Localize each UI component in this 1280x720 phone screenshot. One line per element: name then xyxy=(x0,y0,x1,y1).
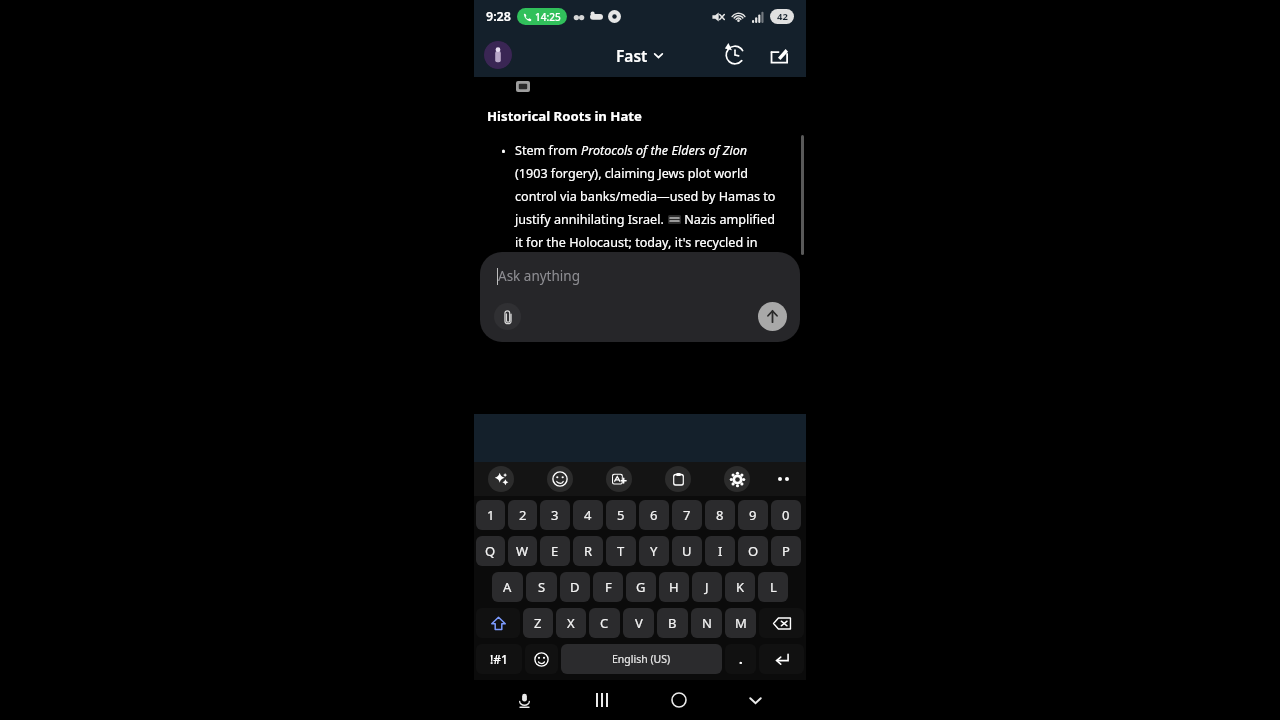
staticText: L xyxy=(770,578,777,596)
button[interactable]: B xyxy=(657,608,688,638)
button[interactable]: E xyxy=(540,536,570,566)
button[interactable]: Clipboard xyxy=(665,466,691,492)
button[interactable]: Send xyxy=(758,302,787,331)
staticText: B xyxy=(668,614,677,632)
button[interactable]: M xyxy=(725,608,756,638)
staticText: 5 xyxy=(617,506,625,524)
staticText: 7 xyxy=(683,506,691,524)
button[interactable]: L xyxy=(758,572,788,602)
button[interactable]: K xyxy=(725,572,755,602)
button[interactable]: Z xyxy=(523,608,553,638)
button[interactable]: S xyxy=(526,572,557,602)
button[interactable]: G xyxy=(626,572,656,602)
button[interactable]: Emoji xyxy=(525,644,558,674)
button[interactable]: U xyxy=(672,536,702,566)
button[interactable]: English (US) xyxy=(561,644,722,674)
staticText: 9:28 xyxy=(486,8,511,25)
button[interactable]: 8 xyxy=(705,500,735,530)
staticText: (1903 forgery), claiming Jews plot world xyxy=(515,165,748,182)
button[interactable]: T xyxy=(606,536,636,566)
button[interactable]: Voice input xyxy=(486,683,563,717)
staticText: Stem from xyxy=(515,142,581,159)
button[interactable]: 0 xyxy=(771,500,801,530)
staticText: Historical Roots in Hate xyxy=(487,107,642,125)
staticText: Ask anything xyxy=(498,267,580,285)
button[interactable]: C xyxy=(589,608,620,638)
button[interactable]: X xyxy=(556,608,586,638)
button[interactable]: 1 xyxy=(476,500,505,530)
button[interactable]: R xyxy=(573,536,603,566)
staticText: 14:25 xyxy=(535,10,561,24)
button[interactable]: 7 xyxy=(672,500,702,530)
staticText: X xyxy=(567,614,575,632)
staticText: D xyxy=(570,578,580,596)
button[interactable]: 3 xyxy=(540,500,570,530)
staticText: 6 xyxy=(650,506,658,524)
button[interactable]: D xyxy=(560,572,590,602)
staticText: Q xyxy=(485,542,496,560)
button[interactable]: 6 xyxy=(639,500,669,530)
button[interactable]: 9 xyxy=(738,500,768,530)
staticText: K xyxy=(736,578,745,596)
button[interactable]: 5 xyxy=(606,500,636,530)
staticText: T xyxy=(617,542,625,560)
button[interactable]: Q xyxy=(476,536,505,566)
staticText: Y xyxy=(650,542,658,560)
button[interactable]: More xyxy=(778,466,792,492)
staticText: 8 xyxy=(716,506,724,524)
button[interactable]: History xyxy=(720,40,750,70)
button[interactable]: Hide keyboard xyxy=(717,683,794,717)
staticText: P xyxy=(782,542,790,560)
button[interactable]: Translate xyxy=(606,466,632,492)
button[interactable]: P xyxy=(771,536,801,566)
staticText: Fast xyxy=(616,45,648,66)
staticText: O xyxy=(748,542,759,560)
button[interactable]: J xyxy=(692,572,722,602)
staticText: control via banks/media—used by Hamas to xyxy=(515,188,776,205)
button[interactable]: New chat xyxy=(764,40,794,70)
staticText: R xyxy=(584,542,593,560)
button[interactable]: Ask anything xyxy=(480,252,800,342)
button[interactable]: Profile xyxy=(484,41,512,69)
button[interactable]: N xyxy=(691,608,722,638)
button[interactable]: Y xyxy=(639,536,669,566)
staticText: I xyxy=(718,542,723,560)
button[interactable]: Fast xyxy=(608,41,672,70)
staticText: 2 xyxy=(519,506,527,524)
staticText: C xyxy=(600,614,609,632)
staticText: E xyxy=(551,542,559,560)
staticText: 3 xyxy=(551,506,559,524)
staticText: justify annihilating Israel. xyxy=(515,211,668,228)
button[interactable]: Recents xyxy=(563,683,640,717)
staticText: F xyxy=(605,578,612,596)
staticText: • xyxy=(501,142,506,160)
button[interactable]: Backspace xyxy=(759,608,804,638)
button[interactable]: F xyxy=(593,572,623,602)
staticText: M xyxy=(735,614,747,632)
button[interactable]: AI assist xyxy=(488,466,514,492)
staticText: 1 xyxy=(487,506,495,524)
staticText: . xyxy=(739,650,743,668)
button[interactable]: Enter xyxy=(759,644,804,674)
button[interactable]: Home xyxy=(640,683,717,717)
button[interactable]: Settings xyxy=(724,466,750,492)
button[interactable]: H xyxy=(659,572,689,602)
button[interactable]: Emoji xyxy=(547,466,573,492)
button[interactable]: Shift xyxy=(476,608,520,638)
staticText: 0 xyxy=(782,506,790,524)
button[interactable]: 4 xyxy=(573,500,603,530)
staticText: 42 xyxy=(777,10,788,23)
button[interactable]: !#1 xyxy=(476,644,522,674)
button[interactable]: I xyxy=(705,536,735,566)
staticText: S xyxy=(538,578,546,596)
button[interactable]: 2 xyxy=(508,500,537,530)
staticText: Nazis amplified xyxy=(681,211,775,228)
staticText: J xyxy=(705,578,709,596)
button[interactable]: W xyxy=(508,536,537,566)
button[interactable]: V xyxy=(623,608,654,638)
staticText: 4 xyxy=(584,506,592,524)
button[interactable]: Attach file xyxy=(494,303,521,330)
button[interactable]: . xyxy=(725,644,756,674)
button[interactable]: O xyxy=(738,536,768,566)
button[interactable]: A xyxy=(492,572,523,602)
